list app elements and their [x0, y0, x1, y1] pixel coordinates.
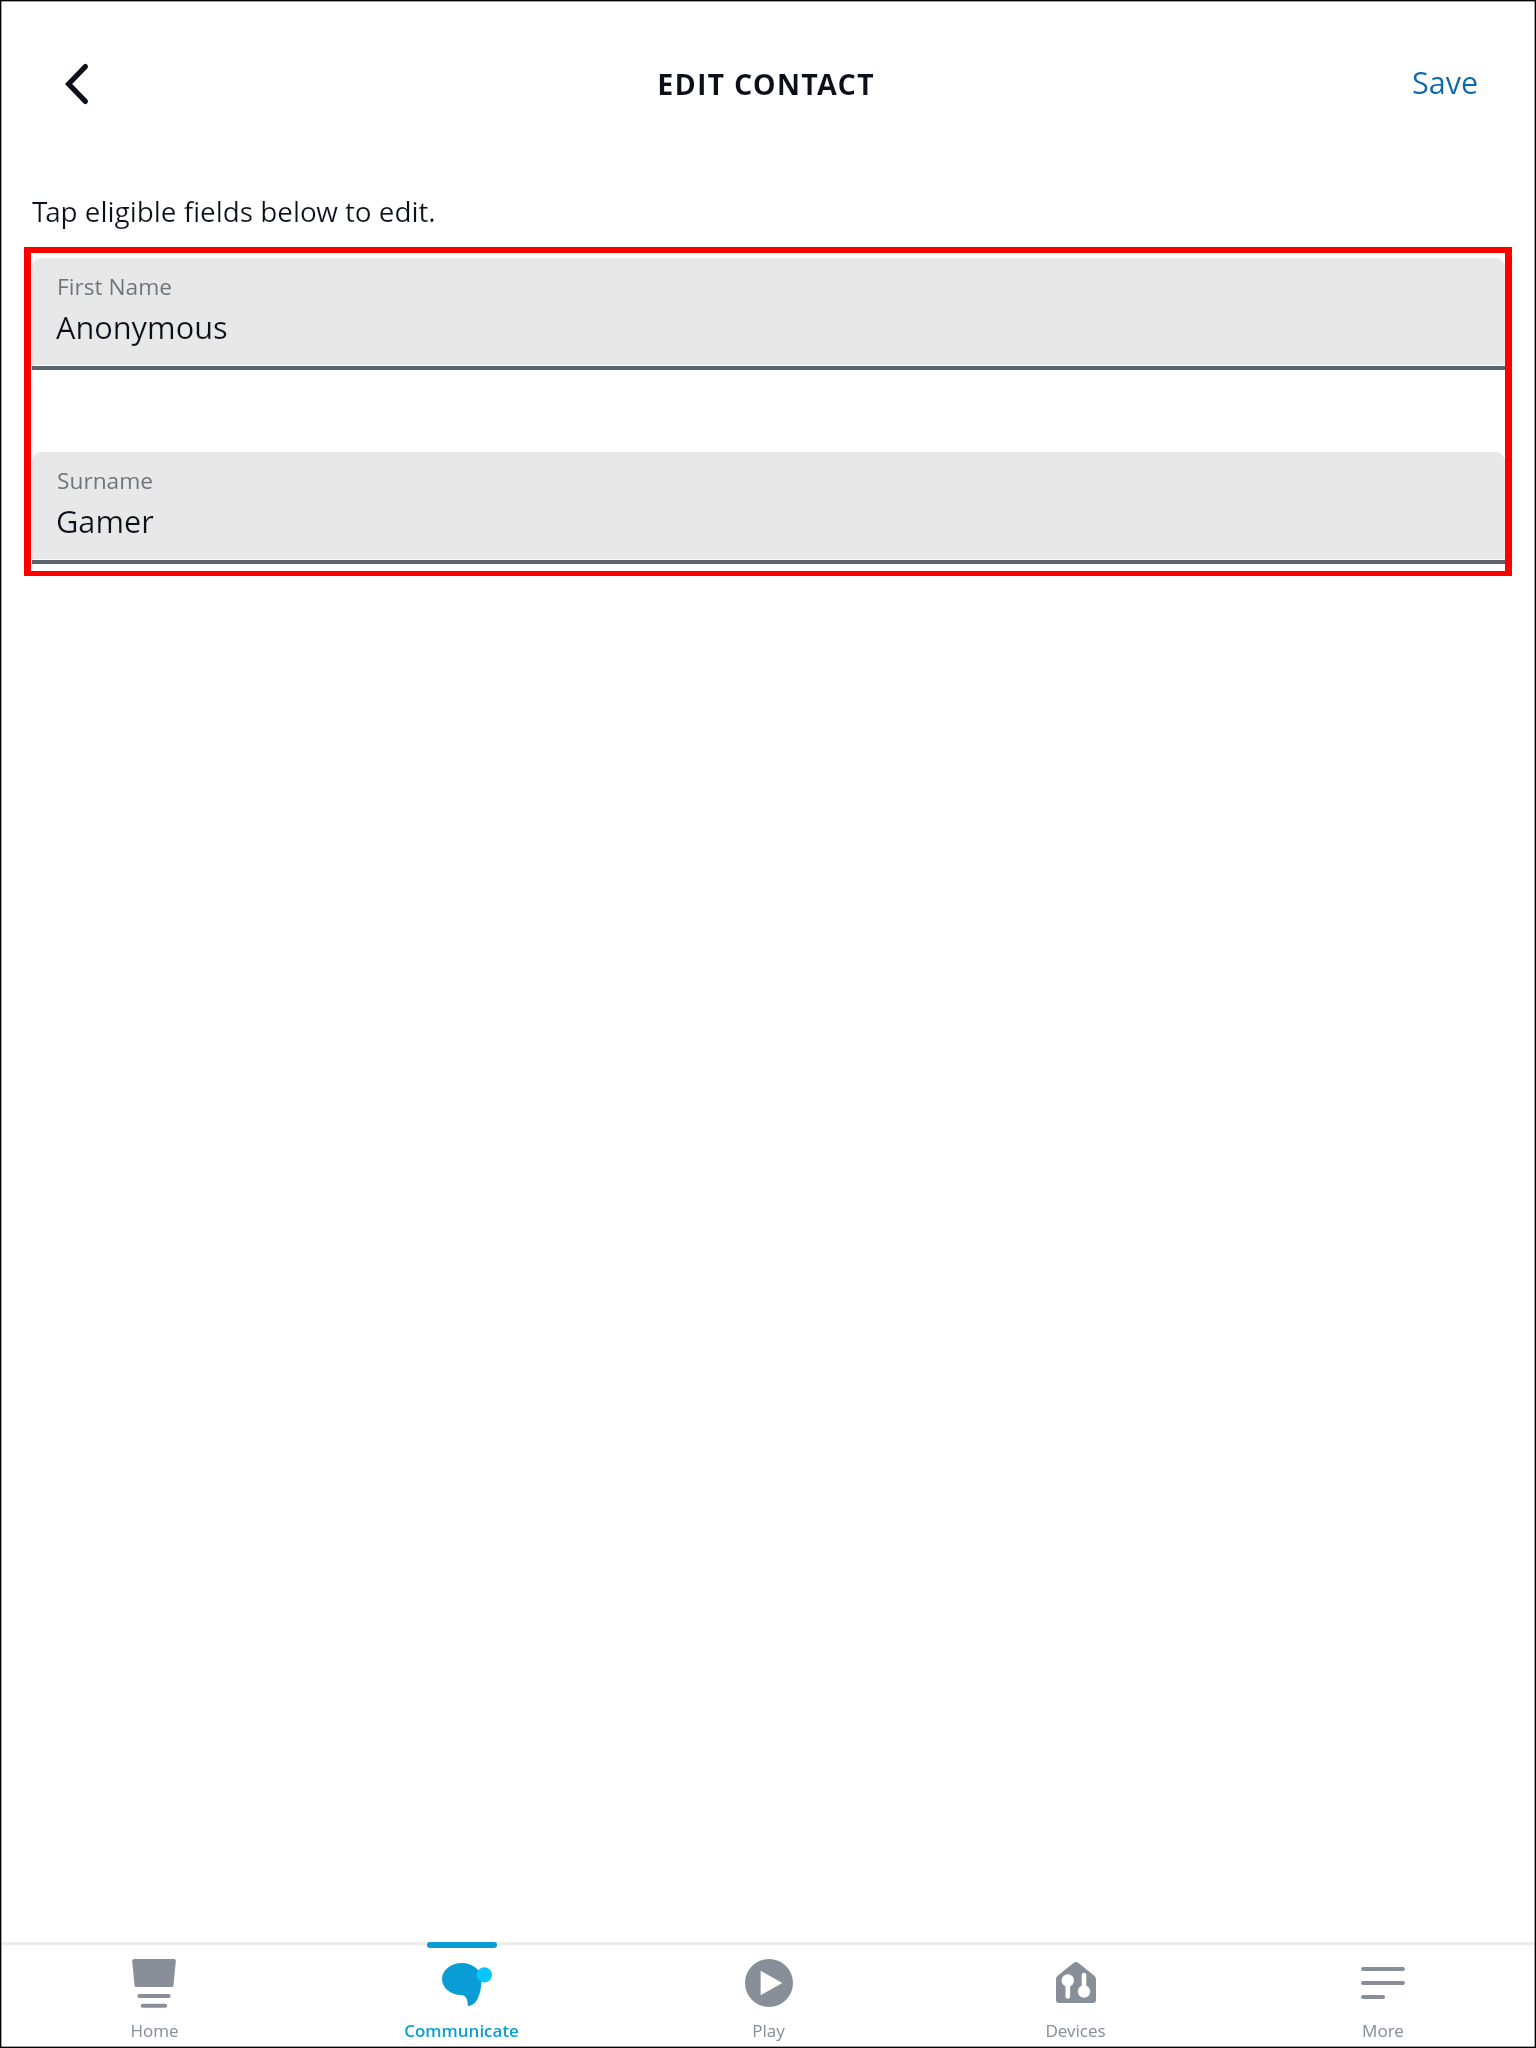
button[interactable]: Home — [0, 1945, 308, 2048]
staticText: First Name — [57, 271, 172, 302]
button[interactable]: Back — [42, 50, 112, 118]
button[interactable]: Devices — [922, 1945, 1229, 2048]
staticText: Play — [752, 2019, 785, 2042]
staticText: Home — [130, 2019, 179, 2042]
staticText: More — [1362, 2019, 1404, 2042]
staticText: Tap eligible fields below to edit. — [32, 192, 436, 230]
button[interactable]: More — [1229, 1945, 1536, 2048]
staticText: Devices — [1045, 2019, 1106, 2042]
staticText: Surname — [57, 465, 154, 496]
button[interactable]: Save — [1389, 46, 1501, 118]
button[interactable]: First Name — [32, 258, 1505, 365]
staticText: Gamer — [56, 500, 154, 542]
button[interactable]: Play — [615, 1945, 922, 2048]
staticText: Save — [1412, 61, 1479, 103]
staticText: EDIT CONTACT — [0, 64, 1534, 103]
button[interactable]: Communicate — [308, 1945, 615, 2048]
staticText: Communicate — [404, 2019, 519, 2042]
button[interactable]: Surname — [32, 452, 1505, 559]
staticText: Anonymous — [56, 306, 228, 348]
